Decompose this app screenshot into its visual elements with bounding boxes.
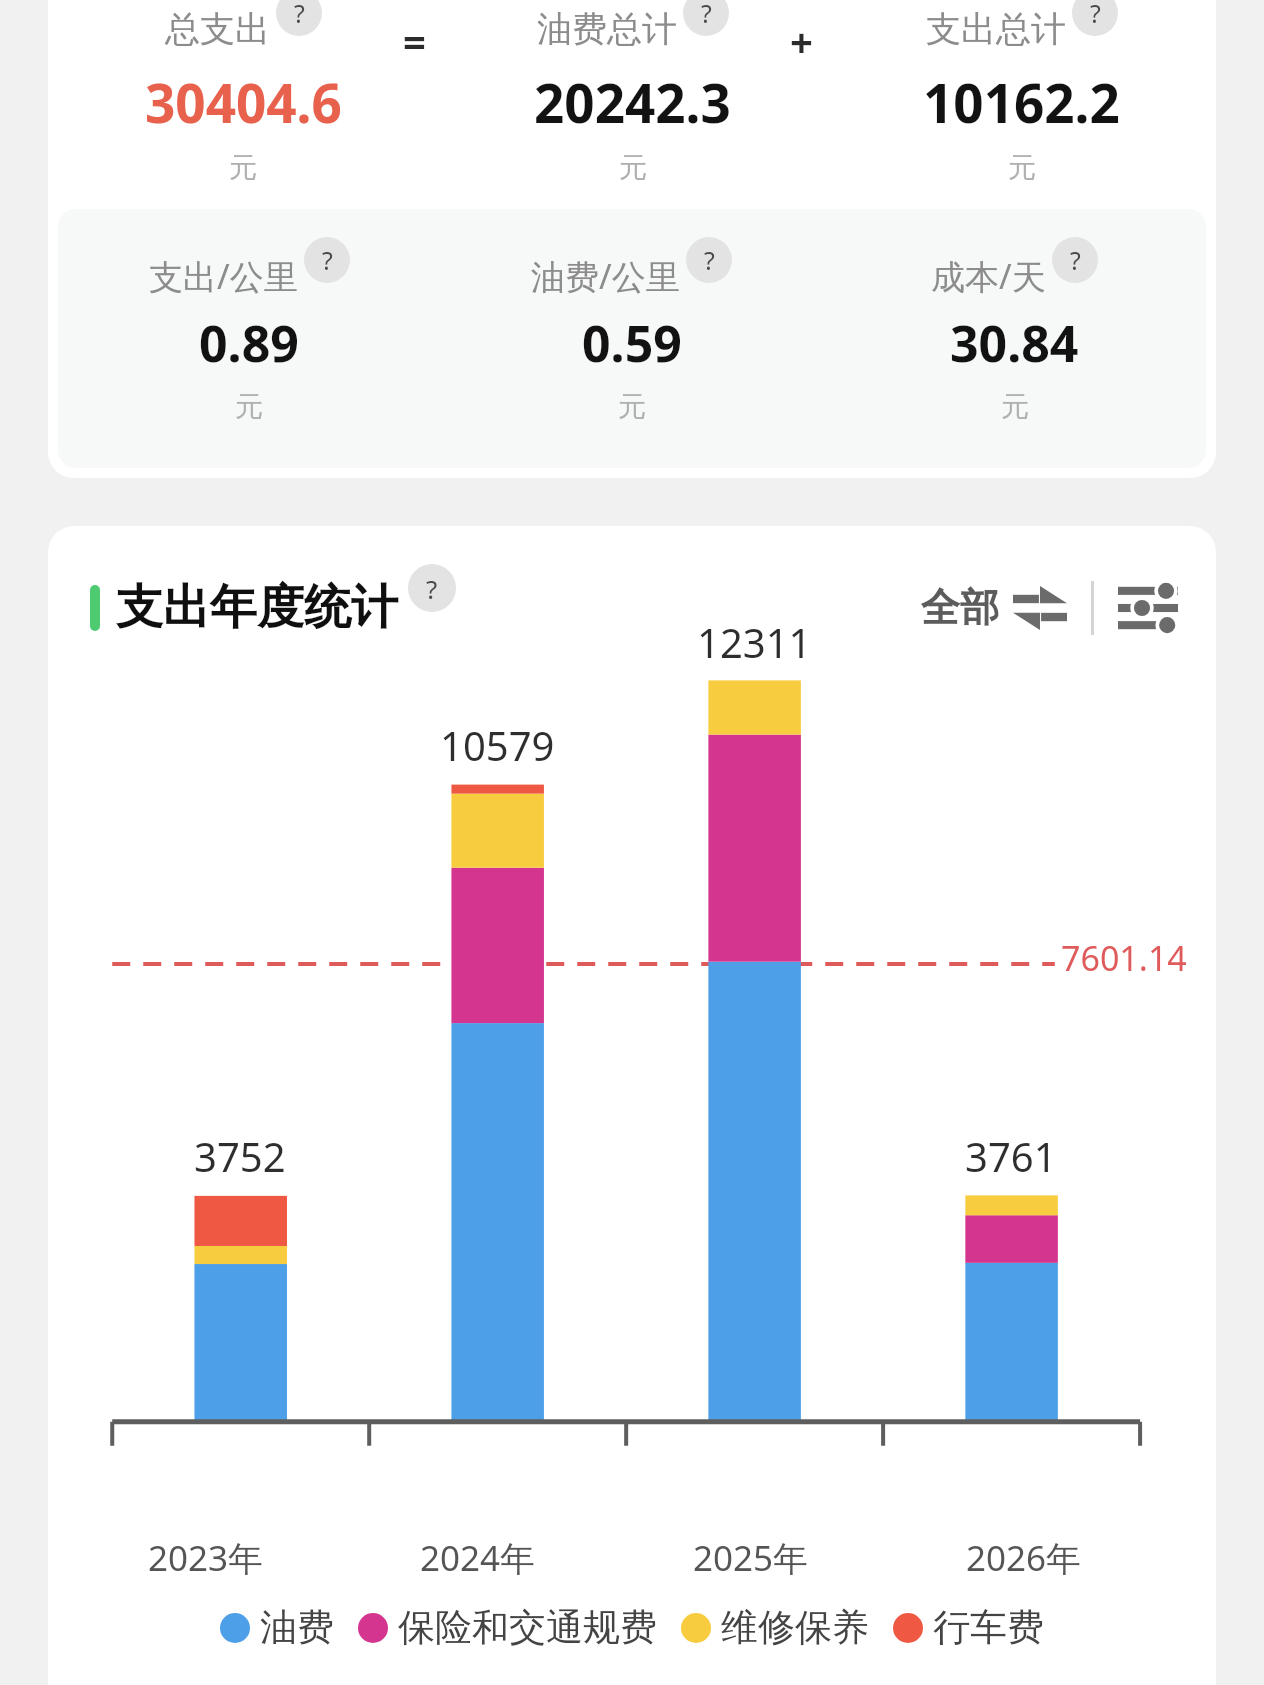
staticText: 支出年度统计 xyxy=(116,578,398,637)
staticText: 20242.3 xyxy=(534,66,731,138)
staticText: ? xyxy=(322,243,333,277)
button[interactable]: Help xyxy=(1052,237,1098,283)
button[interactable]: 油费总计 xyxy=(438,6,827,185)
staticText: ? xyxy=(426,571,438,606)
staticText: 全部 xyxy=(921,583,999,632)
staticText: 2023年 xyxy=(148,1534,264,1582)
staticText: 2024年 xyxy=(420,1534,536,1582)
staticText: 油费 xyxy=(260,1604,334,1651)
staticText: 油费总计 xyxy=(537,7,677,51)
button[interactable]: 成本/天 xyxy=(823,253,1206,424)
button[interactable]: 支出总计 xyxy=(827,6,1216,185)
staticText: 0.89 xyxy=(199,309,299,377)
button[interactable]: 油费/公里 xyxy=(440,253,823,424)
staticText: 3752 xyxy=(194,1129,286,1183)
staticText: 30.84 xyxy=(950,309,1079,377)
button[interactable]: 支出/公里 xyxy=(58,253,440,424)
staticText: ? xyxy=(1090,0,1101,30)
button[interactable]: 全部 xyxy=(921,583,1067,632)
button[interactable]: Help xyxy=(408,564,456,612)
staticText: 12311 xyxy=(697,615,812,669)
button[interactable]: Help xyxy=(683,0,729,36)
staticText: 30404.6 xyxy=(145,66,342,138)
staticText: 元 xyxy=(1008,150,1036,185)
staticText: ? xyxy=(701,0,712,30)
staticText: ? xyxy=(294,0,305,30)
staticText: 支出总计 xyxy=(926,7,1066,51)
staticText: 元 xyxy=(229,150,257,185)
button[interactable]: 总支出 xyxy=(48,6,438,185)
staticText: 元 xyxy=(1001,389,1029,424)
button[interactable]: 维修保养 xyxy=(681,1604,869,1651)
staticText: 行车费 xyxy=(933,1604,1044,1651)
staticText: 支出/公里 xyxy=(149,253,298,299)
button[interactable]: Help xyxy=(686,237,732,283)
staticText: 10579 xyxy=(440,718,555,772)
button[interactable]: 行车费 xyxy=(893,1604,1044,1651)
staticText: ? xyxy=(1070,243,1081,277)
staticText: + xyxy=(790,14,813,68)
button[interactable]: Chart options xyxy=(1118,582,1178,634)
staticText: ? xyxy=(704,243,715,277)
staticText: 元 xyxy=(235,389,263,424)
staticText: 成本/天 xyxy=(931,253,1046,299)
staticText: 元 xyxy=(618,389,646,424)
button[interactable]: Help xyxy=(304,237,350,283)
staticText: 维修保养 xyxy=(721,1604,869,1651)
button[interactable]: 支出年度统计 xyxy=(90,578,398,637)
button[interactable]: 保险和交通规费 xyxy=(358,1604,657,1651)
staticText: 2026年 xyxy=(966,1534,1082,1582)
staticText: 7601.14 xyxy=(1061,935,1187,981)
staticText: 油费/公里 xyxy=(531,253,680,299)
staticText: 10162.2 xyxy=(923,66,1120,138)
staticText: = xyxy=(403,14,426,68)
staticText: 3761 xyxy=(965,1129,1057,1183)
staticText: 保险和交通规费 xyxy=(398,1604,657,1651)
button[interactable]: Help xyxy=(1072,0,1118,36)
staticText: 0.59 xyxy=(582,309,682,377)
button[interactable]: 油费 xyxy=(220,1604,334,1651)
button[interactable]: Help xyxy=(276,0,322,36)
staticText: 元 xyxy=(619,150,647,185)
staticText: 总支出 xyxy=(165,7,270,51)
staticText: 2025年 xyxy=(693,1534,809,1582)
